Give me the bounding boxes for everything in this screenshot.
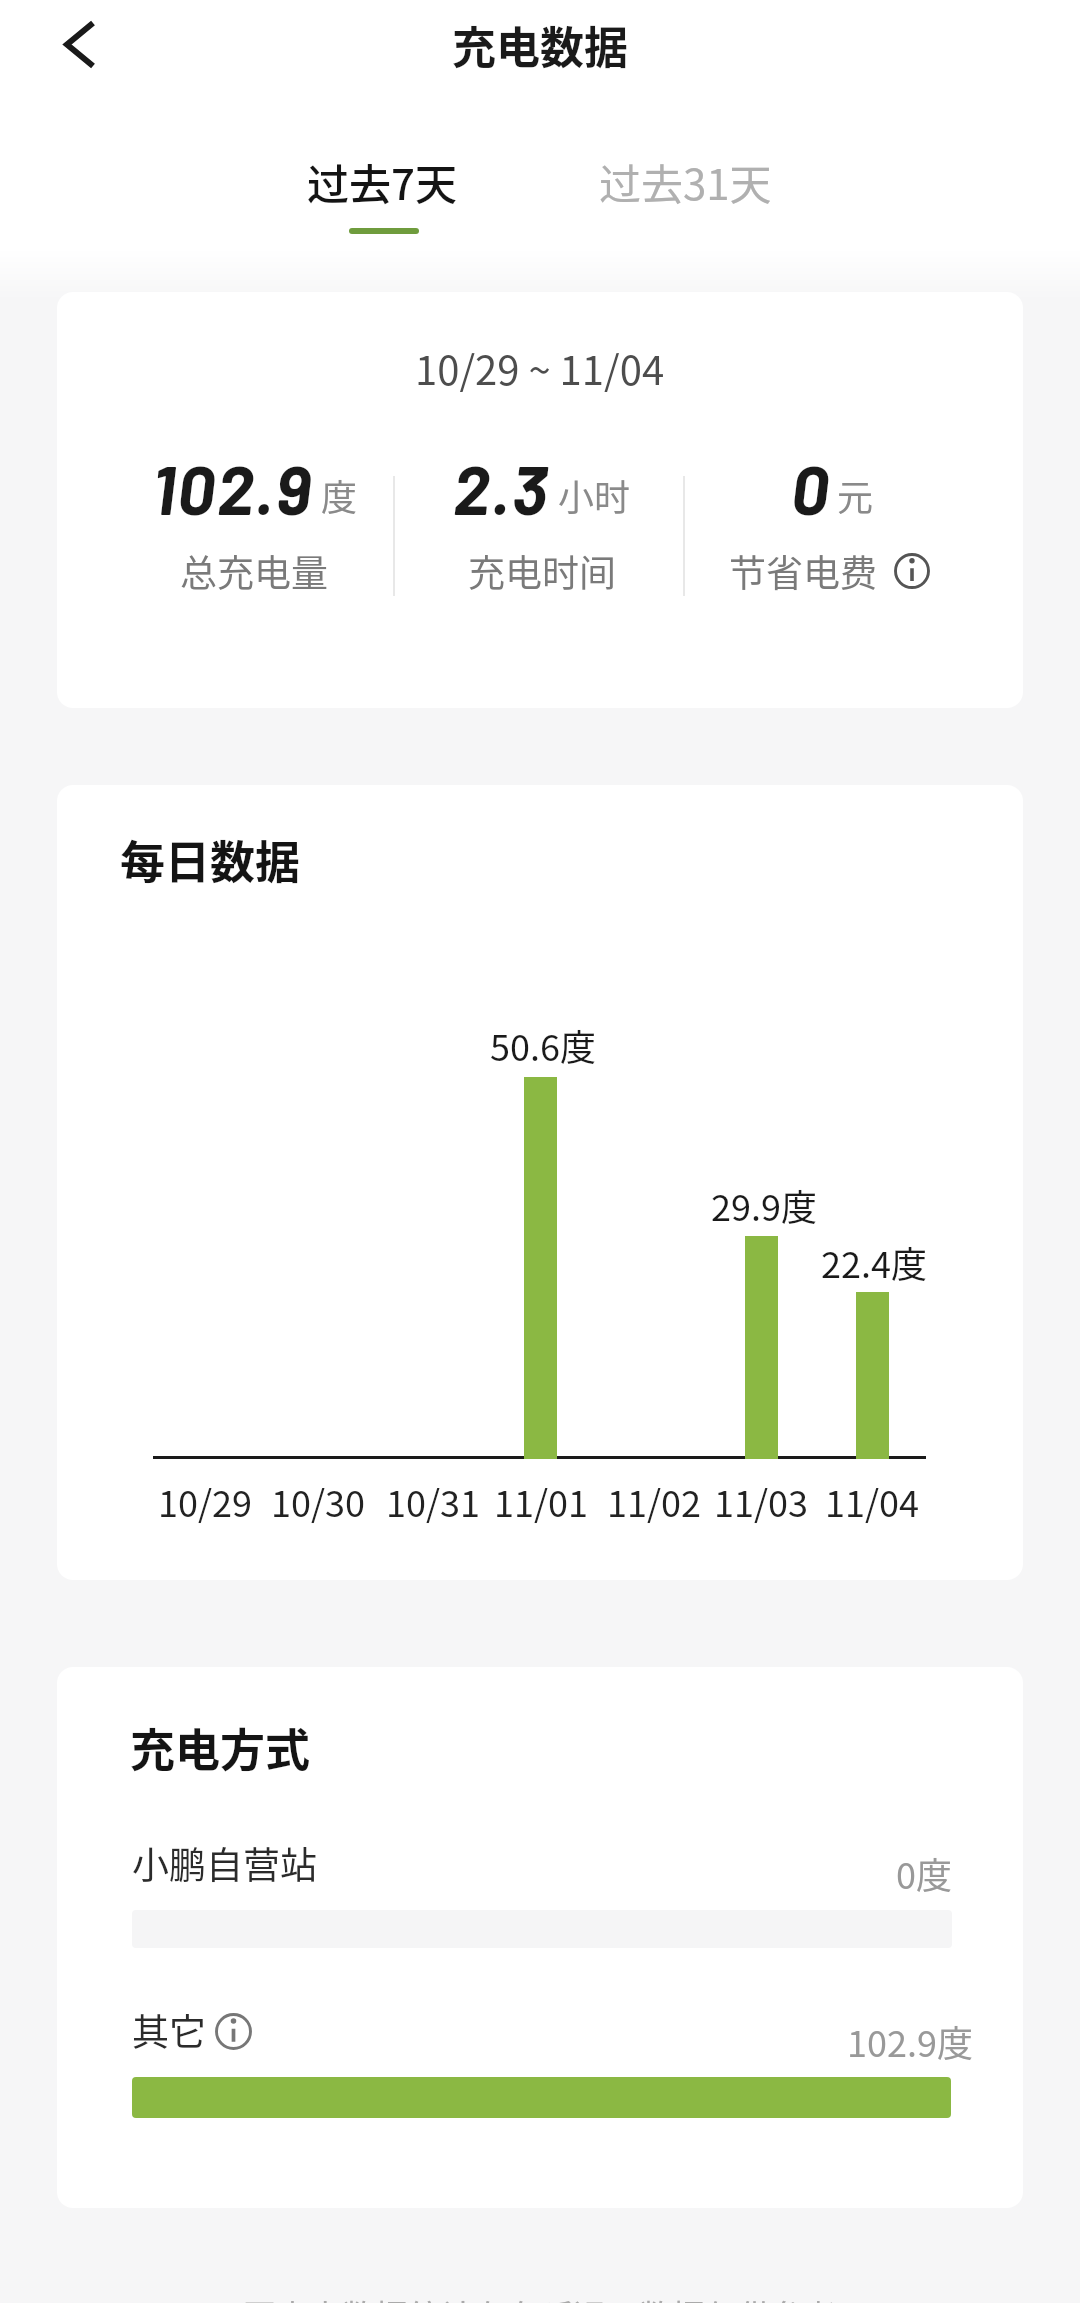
staticText: 小时 bbox=[558, 469, 631, 521]
staticText: 102.9 bbox=[152, 447, 313, 529]
button[interactable] bbox=[40, 10, 120, 80]
staticText: 10/29 bbox=[158, 1475, 253, 1527]
staticText: 元 bbox=[837, 469, 874, 521]
staticText: 过去7天 bbox=[307, 151, 457, 212]
staticText: 每日数据 bbox=[120, 827, 301, 892]
staticText: 充电方式 bbox=[130, 1715, 311, 1780]
button[interactable]: 其它 bbox=[132, 2003, 206, 2057]
staticText: 22.4度 bbox=[821, 1236, 927, 1288]
staticText: 11/04 bbox=[825, 1475, 920, 1527]
button[interactable] bbox=[215, 2013, 252, 2050]
staticText: 11/03 bbox=[714, 1475, 809, 1527]
staticText: 10/31 bbox=[386, 1475, 481, 1527]
button[interactable]: 过去31天 bbox=[535, 146, 835, 216]
button[interactable] bbox=[894, 553, 930, 589]
staticText: 102.9度 bbox=[847, 2015, 973, 2067]
staticText: 10/29 ~ 11/04 bbox=[415, 339, 665, 397]
staticText: 因充电数据统计存在延迟，数据仅供参考 bbox=[243, 2291, 837, 2303]
staticText: 11/01 bbox=[494, 1475, 589, 1527]
staticText: 10/30 bbox=[271, 1475, 366, 1527]
staticText: 充电时间 bbox=[468, 544, 616, 598]
staticText: 总充电量 bbox=[180, 544, 328, 598]
staticText: 29.9度 bbox=[711, 1179, 817, 1231]
staticText: 过去31天 bbox=[599, 151, 772, 212]
staticText: 0度 bbox=[896, 1847, 952, 1899]
staticText: 小鹏自营站 bbox=[132, 1836, 317, 1890]
staticText: 0 bbox=[791, 447, 829, 529]
staticText: 50.6度 bbox=[490, 1019, 596, 1071]
staticText: 节省电费 bbox=[729, 544, 877, 598]
staticText: 充电数据 bbox=[452, 13, 628, 77]
staticText: 其它 bbox=[132, 2003, 206, 2057]
staticText: 度 bbox=[321, 469, 358, 521]
staticText: 11/02 bbox=[607, 1475, 702, 1527]
staticText: 2.3 bbox=[453, 447, 550, 529]
button[interactable]: 过去7天 bbox=[232, 146, 532, 216]
